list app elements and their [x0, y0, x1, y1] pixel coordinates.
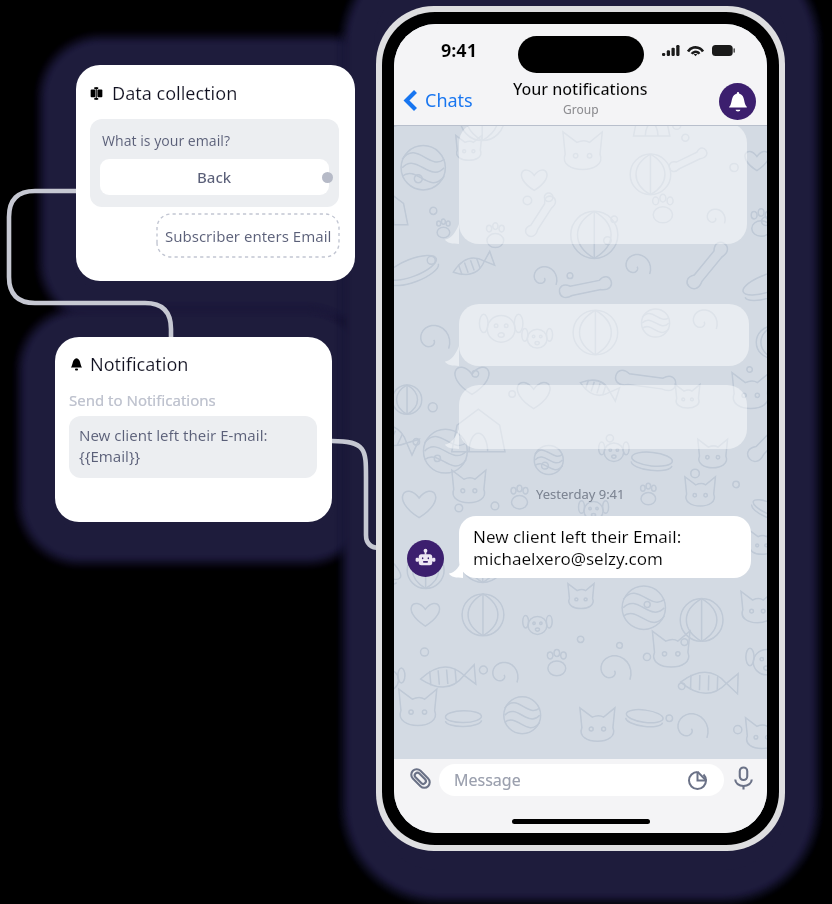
staticText: Yesterday 9:41: [536, 485, 625, 503]
button[interactable]: Message: [439, 764, 724, 796]
staticText: Your notifications: [513, 78, 648, 100]
button[interactable]: Back: [100, 159, 329, 195]
staticText: Message: [454, 769, 521, 791]
staticText: Send to Notifications: [69, 390, 216, 410]
staticText: 9:41: [441, 38, 477, 63]
button[interactable]: Attach file: [407, 765, 434, 792]
button[interactable]: Voice message: [731, 766, 756, 791]
staticText: Notification: [90, 352, 189, 377]
button[interactable]: Notifications: [719, 83, 756, 120]
staticText: What is your email?: [102, 131, 231, 150]
button[interactable]: Chats: [405, 88, 473, 113]
staticText: Subscriber enters Email: [165, 226, 332, 246]
staticText: New client left their E-mail: {{Email}}: [79, 425, 268, 467]
staticText: Data collection: [112, 81, 238, 106]
staticText: Group: [563, 101, 599, 117]
staticText: Back: [197, 167, 232, 187]
staticText: Chats: [425, 88, 473, 113]
staticText: New client left their Email: michaelxero…: [473, 525, 682, 570]
